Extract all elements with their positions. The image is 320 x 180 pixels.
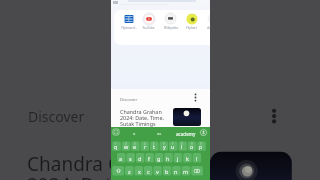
button[interactable]: q bbox=[112, 141, 120, 150]
staticText: 6 bbox=[163, 142, 165, 146]
staticText: b bbox=[165, 168, 169, 175]
staticText: a bbox=[133, 131, 136, 137]
button[interactable]: y bbox=[160, 141, 168, 150]
staticText: d bbox=[138, 155, 142, 162]
staticText: 9 bbox=[191, 142, 193, 146]
button[interactable]: a bbox=[117, 153, 125, 162]
staticText: c bbox=[147, 168, 150, 175]
staticText: w bbox=[124, 143, 129, 150]
button[interactable]: n bbox=[172, 166, 180, 175]
staticText: 3 bbox=[134, 142, 136, 146]
button[interactable]: l bbox=[193, 153, 201, 162]
button[interactable]: Backspace bbox=[191, 166, 203, 175]
button[interactable]: b bbox=[163, 166, 171, 175]
staticText: i bbox=[181, 143, 183, 150]
staticText: r bbox=[144, 143, 147, 150]
button[interactable]: o bbox=[188, 141, 196, 150]
staticText: Discover bbox=[120, 96, 138, 102]
button[interactable]: Discover bbox=[116, 93, 192, 104]
button[interactable]: Chandra Grahan 2024: Date, Time, Sutak T… bbox=[116, 103, 208, 128]
button[interactable]: v bbox=[153, 166, 161, 175]
button[interactable]: academy bbox=[173, 128, 199, 139]
button[interactable]: e bbox=[131, 141, 139, 150]
staticText: e bbox=[133, 143, 137, 150]
staticText: n bbox=[174, 168, 178, 175]
staticText: 8 bbox=[181, 142, 183, 146]
staticText: j bbox=[177, 155, 179, 162]
button[interactable]: u bbox=[169, 141, 177, 150]
button[interactable]: Wikipedia bbox=[160, 12, 181, 30]
staticText: YouTube bbox=[142, 26, 155, 30]
button[interactable]: Amazon bbox=[202, 12, 210, 30]
button[interactable]: h bbox=[164, 153, 172, 162]
staticText: Flipkart bbox=[186, 26, 197, 30]
button[interactable]: m bbox=[182, 166, 190, 175]
staticText: m bbox=[183, 168, 189, 175]
button[interactable]: k bbox=[183, 153, 191, 162]
button[interactable]: f bbox=[145, 153, 153, 162]
staticText: z bbox=[128, 168, 131, 175]
button[interactable]: More options bbox=[189, 91, 202, 104]
button[interactable]: r bbox=[141, 141, 149, 150]
button[interactable]: z bbox=[125, 166, 133, 175]
button[interactable]: a bbox=[121, 128, 147, 139]
staticText: academy bbox=[176, 131, 196, 137]
staticText: Chandra Grahan 2024: Date, Time, Sutak T… bbox=[120, 108, 164, 133]
staticText: 7 bbox=[172, 142, 174, 146]
staticText: Amazon bbox=[207, 26, 210, 30]
staticText: g bbox=[157, 155, 161, 162]
button[interactable]: s bbox=[126, 153, 134, 162]
staticText: Chandra Grahan 2024: Date, Time, bbox=[27, 151, 182, 180]
staticText: v bbox=[156, 168, 159, 175]
button[interactable]: Flipkart bbox=[181, 12, 202, 30]
button[interactable]: t bbox=[150, 141, 158, 150]
staticText: 0 bbox=[200, 142, 202, 146]
staticText: s bbox=[129, 155, 132, 162]
staticText: o bbox=[190, 143, 194, 150]
staticText: t bbox=[153, 143, 155, 150]
staticText: 4 bbox=[144, 142, 146, 146]
staticText: Flipboard… bbox=[121, 26, 137, 30]
button[interactable]: g bbox=[155, 153, 163, 162]
button[interactable]: YouTube bbox=[138, 12, 159, 30]
button[interactable]: w bbox=[122, 141, 130, 150]
staticText: x bbox=[138, 168, 141, 175]
staticText: k bbox=[186, 155, 189, 162]
button[interactable]: Shift bbox=[112, 166, 124, 175]
staticText: h bbox=[166, 155, 170, 162]
staticText: 1 bbox=[115, 142, 117, 146]
staticText: y bbox=[163, 143, 166, 150]
staticText: as bbox=[157, 131, 162, 137]
button[interactable]: Switch keyboard bbox=[113, 129, 119, 135]
button[interactable]: Flipboard… bbox=[118, 12, 139, 30]
button[interactable]: i bbox=[178, 141, 186, 150]
staticText: 5 bbox=[153, 142, 155, 146]
staticText: a bbox=[119, 155, 123, 162]
button[interactable]: j bbox=[174, 153, 182, 162]
staticText: Discover bbox=[28, 107, 85, 126]
staticText: 2 bbox=[125, 142, 127, 146]
button[interactable]: p bbox=[197, 141, 205, 150]
button[interactable]: x bbox=[135, 166, 143, 175]
button[interactable]: as bbox=[146, 128, 172, 139]
staticText: l bbox=[196, 155, 198, 162]
button[interactable]: Voice input bbox=[200, 129, 207, 136]
button[interactable]: c bbox=[144, 166, 152, 175]
staticText: p bbox=[199, 143, 203, 150]
button[interactable]: d bbox=[136, 153, 144, 162]
staticText: f bbox=[148, 155, 150, 162]
staticText: u bbox=[171, 143, 175, 150]
staticText: q bbox=[114, 143, 118, 150]
staticText: Wikipedia bbox=[164, 26, 178, 30]
